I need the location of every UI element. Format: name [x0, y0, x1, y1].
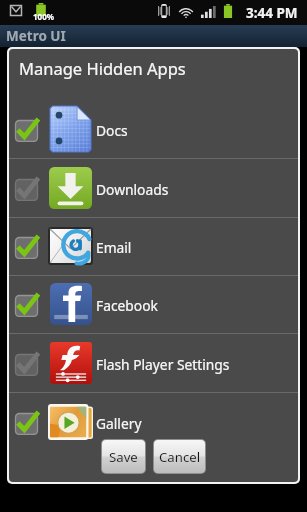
staticText: 100%: [33, 11, 54, 22]
other: New mail: [10, 5, 22, 16]
button[interactable]: Docs: [9, 101, 298, 159]
button[interactable]: Flash Player Settings: [9, 335, 298, 393]
button[interactable]: Downloads: [9, 160, 298, 218]
staticText: 3:44 PM: [246, 4, 298, 22]
button[interactable]: Facebook: [9, 276, 298, 334]
staticText: Facebook: [96, 296, 158, 315]
button[interactable]: Email: [9, 218, 298, 276]
staticText: Metro UI: [6, 27, 66, 45]
staticText: Save: [109, 448, 138, 466]
button[interactable]: Cancel: [154, 440, 205, 473]
staticText: Email: [96, 238, 132, 257]
staticText: Docs: [96, 121, 128, 140]
staticText: Cancel: [159, 448, 201, 466]
staticText: Manage Hidden Apps: [19, 57, 186, 79]
button[interactable]: Gallery: [9, 394, 298, 452]
button[interactable]: Save: [102, 440, 145, 473]
staticText: Downloads: [96, 180, 169, 199]
staticText: Flash Player Settings: [96, 355, 230, 374]
staticText: Gallery: [96, 414, 142, 433]
